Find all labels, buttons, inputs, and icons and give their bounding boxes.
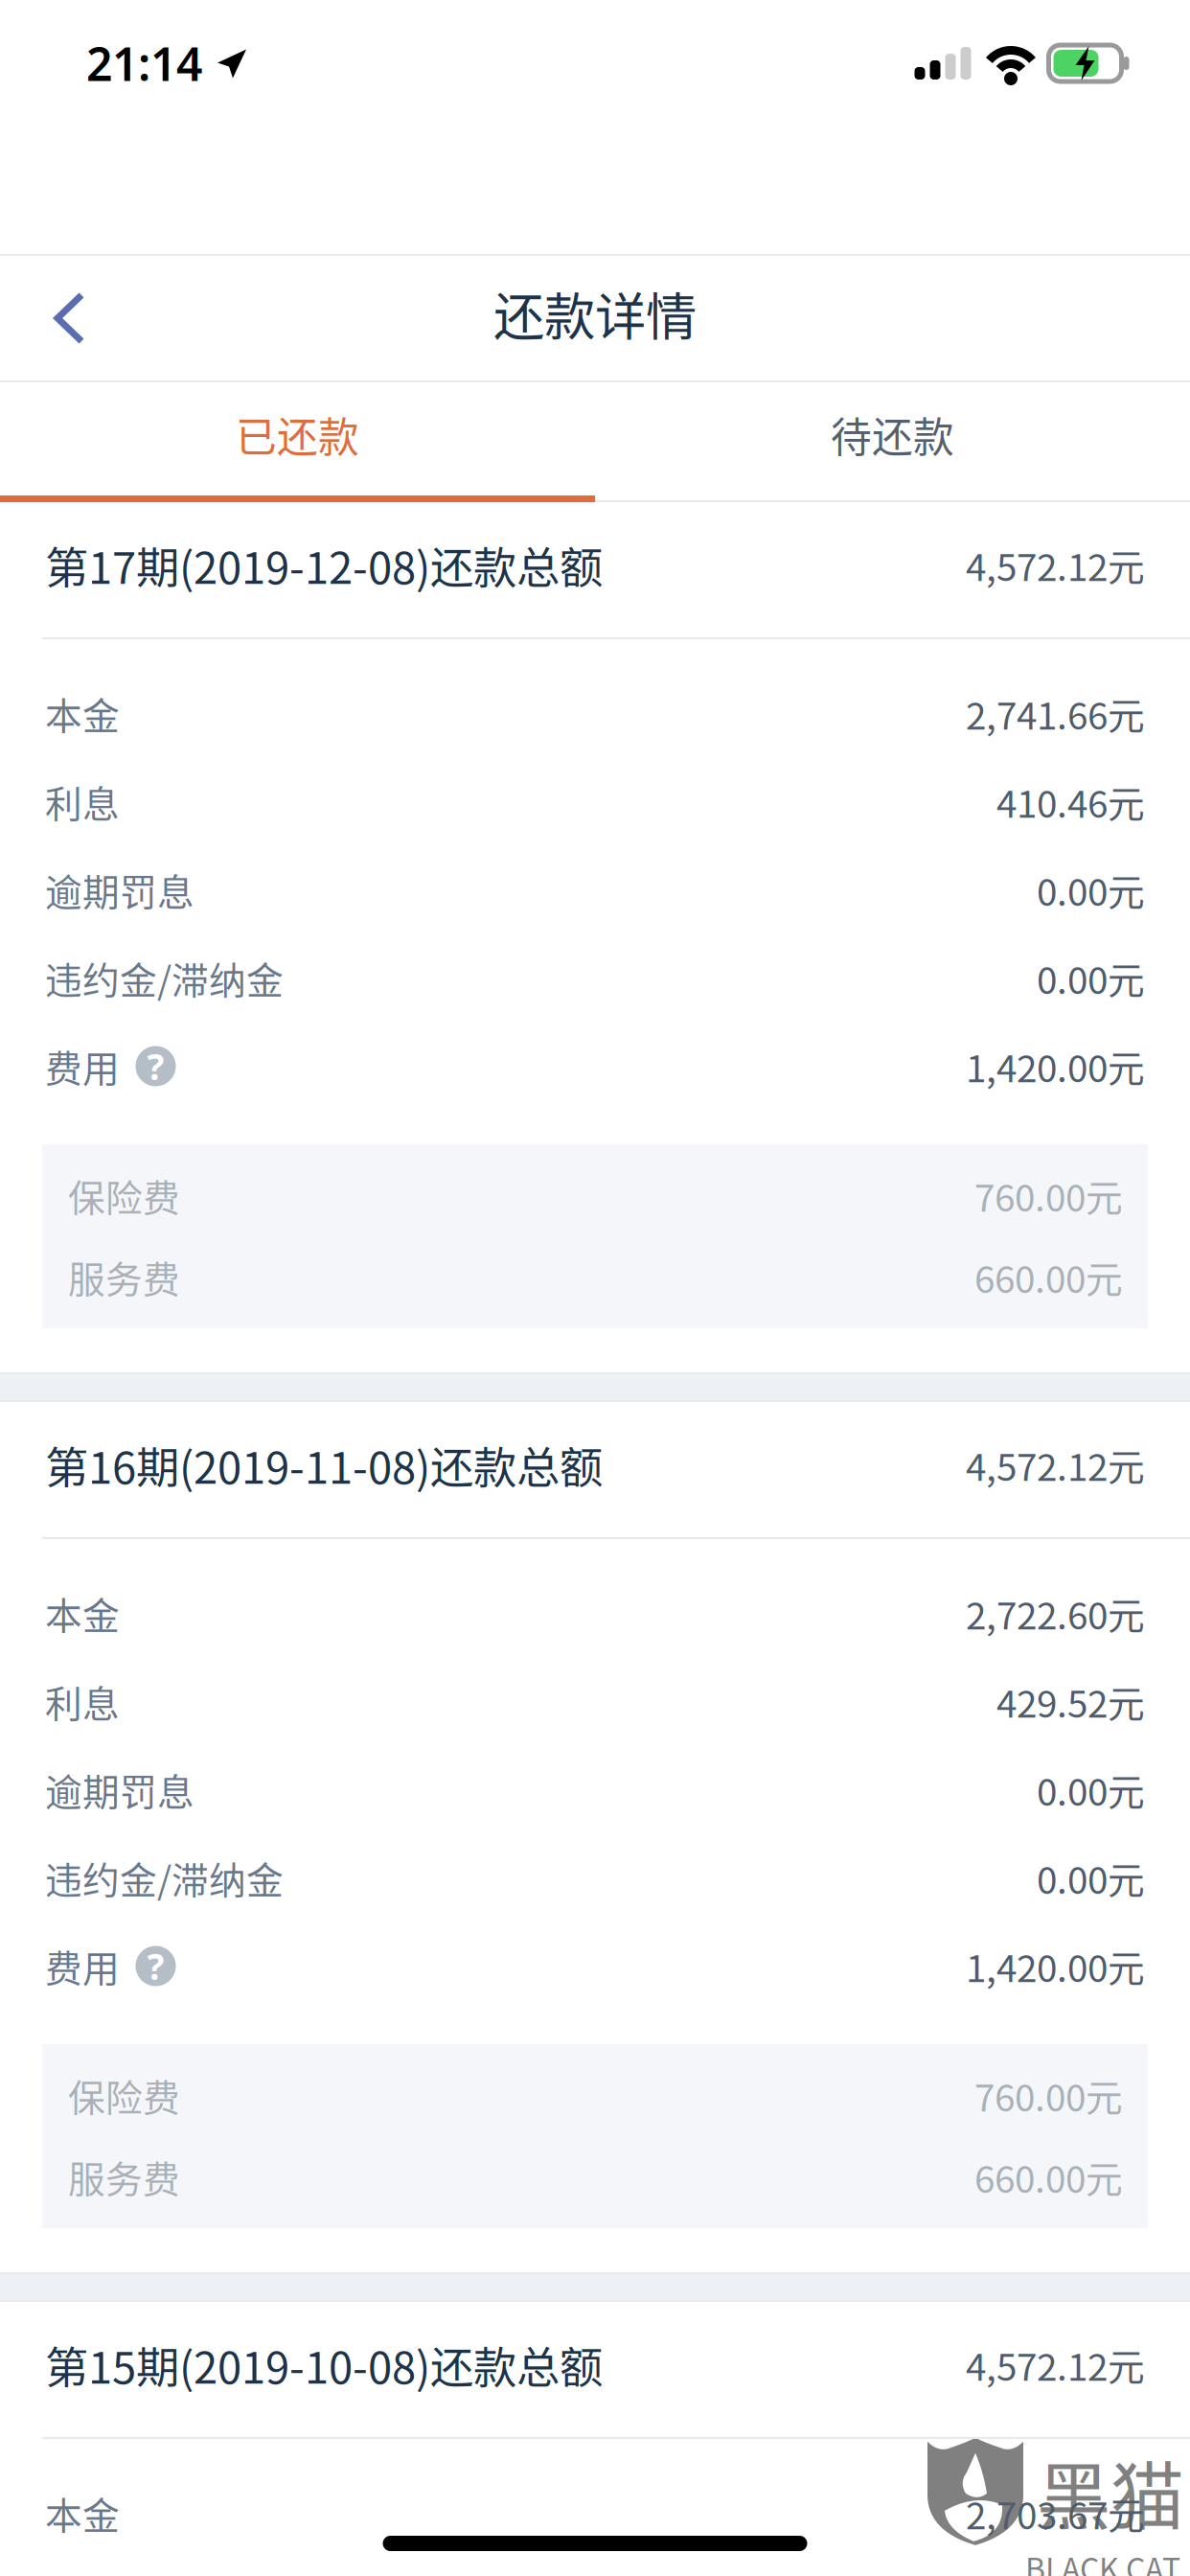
staticText: 760.00元 (974, 2069, 1123, 2122)
staticText: 违约金/滞纳金 (45, 1851, 284, 1905)
staticText: 2,741.66元 (966, 687, 1145, 740)
staticText: 4,572.12元 (966, 1438, 1145, 1492)
staticText: 0.00元 (1037, 863, 1145, 917)
staticText: 违约金/滞纳金 (45, 951, 284, 1005)
staticText: 待还款 (831, 405, 954, 464)
staticText: 1,420.00元 (966, 1039, 1145, 1093)
staticText: 保险费 (68, 1169, 180, 1222)
staticText: ? (147, 1942, 164, 1990)
staticText: 费用 (45, 1039, 120, 1093)
button[interactable]: 待还款 (595, 382, 1190, 495)
staticText: 利息 (45, 1675, 120, 1728)
staticText: 2,722.60元 (966, 1587, 1145, 1640)
button[interactable]: Back (0, 256, 110, 380)
staticText: 服务费 (68, 2150, 180, 2204)
staticText: 0.00元 (1037, 1851, 1145, 1905)
staticText: ? (147, 1042, 164, 1090)
staticText: 费用 (45, 1939, 120, 1993)
staticText: 本金 (45, 687, 120, 740)
staticText: 第17期(2019-12-08)还款总额 (45, 534, 603, 596)
staticText: 429.52元 (996, 1675, 1145, 1728)
staticText: 410.46元 (996, 775, 1145, 828)
staticText: 2,703.67元 (966, 2486, 1145, 2540)
staticText: 黑猫 (1037, 2438, 1184, 2545)
staticText: 保险费 (68, 2069, 180, 2122)
staticText: 21:14 (86, 33, 202, 94)
staticText: 本金 (45, 1587, 120, 1640)
staticText: 4,572.12元 (966, 2338, 1145, 2392)
staticText: 利息 (45, 775, 120, 828)
staticText: 760.00元 (974, 1169, 1123, 1222)
staticText: 0.00元 (1037, 1763, 1145, 1817)
staticText: 4,572.12元 (966, 538, 1145, 592)
staticText: 1,420.00元 (966, 1939, 1145, 1993)
staticText: 第15期(2019-10-08)还款总额 (45, 2333, 603, 2396)
staticText: 逾期罚息 (45, 1763, 195, 1817)
staticText: 0.00元 (1037, 951, 1145, 1005)
button[interactable]: 已还款 (0, 382, 595, 495)
staticText: 660.00元 (974, 1250, 1123, 1304)
staticText: 已还款 (236, 405, 359, 464)
staticText: 本金 (45, 2486, 120, 2540)
staticText: 还款详情 (493, 276, 697, 350)
staticText: 第16期(2019-11-08)还款总额 (45, 1433, 603, 1496)
staticText: 服务费 (68, 1250, 180, 1304)
staticText: 660.00元 (974, 2150, 1123, 2204)
staticText: 逾期罚息 (45, 863, 195, 917)
staticText: BLACK CAT (1025, 2545, 1180, 2576)
